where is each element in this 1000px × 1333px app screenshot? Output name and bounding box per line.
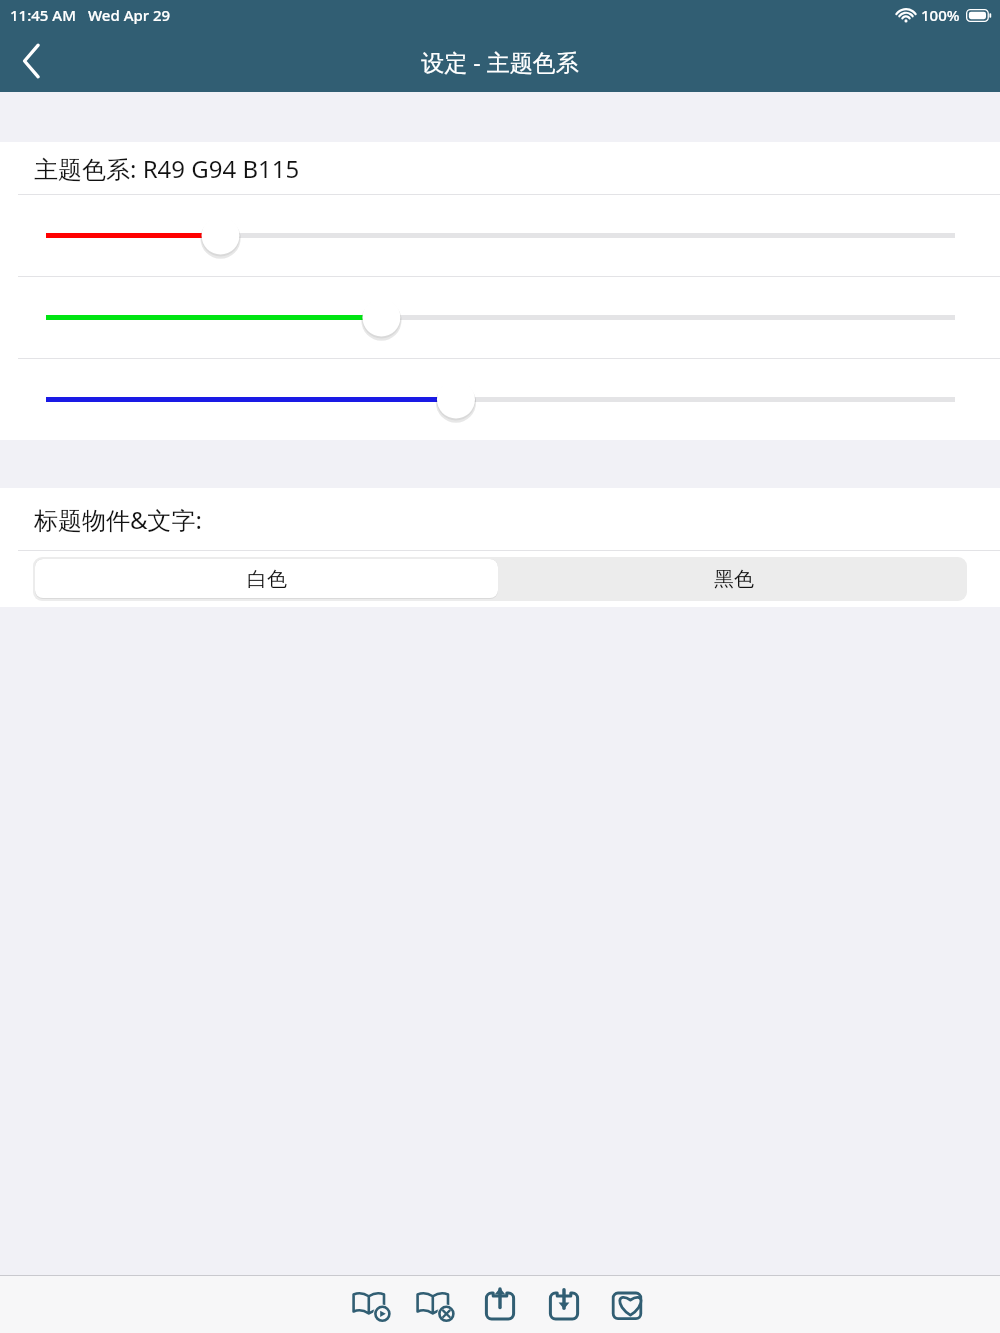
staticText: 设定 - 主题色系 — [421, 46, 579, 77]
button[interactable] — [0, 277, 1000, 358]
staticText: 11:45 AM — [10, 5, 76, 25]
button[interactable] — [0, 359, 1000, 440]
button[interactable] — [0, 195, 1000, 276]
button[interactable]: Share — [478, 1283, 522, 1327]
staticText: Wed Apr 29 — [88, 5, 171, 25]
button[interactable]: Open book — [350, 1283, 394, 1327]
button[interactable]: 白色 — [35, 559, 498, 599]
button[interactable]: 黑色 — [500, 557, 967, 601]
staticText: 主题色系: R49 G94 B115 — [34, 152, 300, 185]
staticText: 标题物件&文字: — [34, 503, 202, 536]
button[interactable]: Download — [542, 1283, 586, 1327]
button[interactable]: Favorite — [606, 1283, 650, 1327]
staticText: 黑色 — [714, 567, 754, 592]
button[interactable]: Close book — [414, 1283, 458, 1327]
staticText: 白色 — [247, 567, 287, 592]
staticText: 100% — [921, 5, 960, 25]
button[interactable]: Back — [0, 30, 64, 92]
